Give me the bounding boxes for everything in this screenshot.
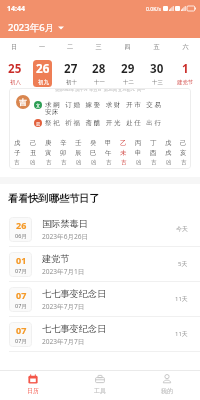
staticText: 癸	[90, 139, 97, 147]
staticText: 辰	[75, 149, 82, 157]
button[interactable]: 1	[176, 60, 195, 87]
button[interactable]: 07	[0, 317, 200, 351]
staticText: 丁	[150, 139, 157, 147]
staticText: 戊	[165, 139, 172, 147]
staticText: 一	[28, 43, 56, 51]
staticText: 初九	[38, 79, 49, 86]
staticText: 未	[120, 149, 127, 157]
staticText: 凶	[91, 159, 97, 166]
staticText: 29	[121, 61, 135, 77]
staticText: 求嗣 订婚 嫁娶 求财 开市 交易	[45, 100, 163, 109]
staticText: 日	[0, 43, 28, 51]
staticText: 壬	[75, 139, 82, 147]
staticText: 卯	[60, 149, 67, 157]
staticText: 2023年7月7日	[42, 302, 85, 311]
staticText: 吉	[121, 159, 127, 166]
staticText: 25	[8, 61, 22, 77]
staticText: 子	[14, 149, 21, 157]
staticText: 寅	[45, 149, 52, 157]
staticText: 甲	[105, 139, 112, 147]
staticText: 凶	[136, 159, 142, 166]
staticText: 吉	[61, 159, 67, 166]
staticText: 十二	[123, 79, 134, 86]
staticText: 六	[171, 43, 200, 51]
staticText: 吉	[181, 159, 187, 166]
staticText: 十一	[94, 79, 105, 86]
button[interactable]: 癸卯(兔)年 戊午月 辛丑日 第26周 五月初九 周一	[9, 88, 191, 169]
staticText: 初十	[66, 79, 77, 86]
staticText: 07月	[15, 267, 27, 275]
staticText: 四	[113, 43, 142, 51]
button[interactable]: 01	[0, 247, 200, 281]
staticText: 己	[180, 139, 187, 147]
staticText: 午	[105, 149, 112, 157]
staticText: 2023年7月7日	[42, 337, 85, 346]
staticText: 凶	[166, 159, 172, 166]
staticText: 庚	[45, 139, 52, 147]
staticText: 5天	[178, 260, 188, 268]
staticText: 丑	[30, 149, 37, 157]
staticText: 凶	[30, 159, 36, 166]
staticText: 乙	[120, 139, 127, 147]
staticText: 忌	[36, 121, 40, 126]
staticText: 06月	[15, 232, 27, 240]
staticText: 30	[150, 61, 164, 77]
staticText: 26	[36, 61, 50, 77]
staticText: 二	[56, 43, 84, 51]
staticText: 11天	[175, 295, 188, 303]
staticText: 2023年6月	[8, 21, 55, 34]
staticText: 07月	[15, 337, 27, 345]
staticText: 三	[84, 43, 113, 51]
staticText: 吉	[19, 98, 27, 107]
staticText: 酉	[150, 149, 157, 157]
staticText: 1	[182, 61, 189, 77]
staticText: 日历	[27, 387, 39, 394]
staticText: 建党节	[177, 79, 194, 86]
staticText: 戌	[165, 149, 172, 157]
button[interactable]: 07	[0, 282, 200, 316]
staticText: 吉	[151, 159, 157, 166]
staticText: 我的	[161, 387, 173, 394]
staticText: 丙	[135, 139, 142, 147]
staticText: 宜	[36, 103, 40, 108]
staticText: 工具	[94, 387, 106, 394]
staticText: 0.0K/s	[146, 5, 161, 12]
staticText: 亥	[180, 149, 187, 157]
staticText: 建党节	[42, 253, 70, 265]
staticText: 初八	[10, 79, 21, 86]
button[interactable]: 26	[0, 212, 200, 246]
staticText: 11天	[175, 330, 188, 338]
button[interactable]: 2023年6月	[8, 19, 64, 36]
staticText: 26	[16, 219, 27, 231]
button[interactable]: 我的	[133, 371, 200, 400]
staticText: 己	[30, 139, 37, 147]
staticText: 28	[92, 61, 106, 77]
staticText: 看看快到哪些节日了	[8, 192, 100, 205]
button[interactable]: 30	[147, 60, 166, 87]
staticText: 2023年6月26日	[42, 232, 89, 241]
button[interactable]: 28	[89, 60, 108, 87]
button[interactable]: 29	[118, 60, 137, 87]
button[interactable]: 26	[33, 60, 52, 87]
staticText: 吉	[46, 159, 52, 166]
staticText: 祭祀 祈福 斋醮 开光 赴任 出行	[45, 118, 163, 127]
staticText: 戊	[14, 139, 21, 147]
button[interactable]: 工具	[66, 371, 133, 400]
staticText: 安床	[45, 108, 59, 116]
staticText: 凶	[76, 159, 82, 166]
staticText: 国际禁毒日	[42, 218, 88, 230]
staticText: 07	[16, 289, 27, 301]
staticText: 申	[135, 149, 142, 157]
staticText: 07	[16, 324, 27, 336]
staticText: 吉	[106, 159, 112, 166]
staticText: 癸卯(兔)年 戊午月 辛丑日 第26周 五月初九 周一	[55, 88, 146, 93]
button[interactable]: 日历	[0, 371, 66, 400]
staticText: 27	[64, 61, 78, 77]
button[interactable]: 25	[5, 60, 24, 87]
staticText: 七七事变纪念日	[42, 323, 107, 335]
staticText: 14:44	[7, 4, 25, 14]
staticText: 五	[142, 43, 171, 51]
staticText: 今天	[176, 225, 188, 233]
button[interactable]: 27	[61, 60, 80, 87]
staticText: 七七事变纪念日	[42, 288, 107, 300]
